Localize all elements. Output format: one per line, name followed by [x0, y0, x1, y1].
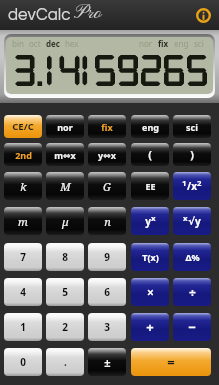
staticText: m — [18, 214, 28, 229]
staticText: − — [188, 318, 196, 336]
button[interactable]: CE/C — [4, 115, 42, 138]
staticText: = — [167, 353, 175, 371]
staticText: ÷ — [189, 284, 196, 300]
staticText: 1 — [20, 320, 26, 334]
staticText: oct — [29, 38, 41, 49]
staticText: ) — [190, 147, 194, 162]
staticText: k — [20, 179, 27, 194]
button[interactable]: 8 — [46, 243, 84, 271]
button[interactable]: EE — [131, 172, 169, 200]
staticText: /x — [187, 179, 197, 193]
button[interactable]: 4 — [4, 278, 42, 306]
staticText: ± — [104, 355, 111, 370]
button[interactable]: 2nd — [4, 143, 42, 166]
button[interactable]: fix — [88, 115, 126, 138]
button[interactable]: 2 — [46, 313, 84, 341]
staticText: M — [60, 179, 71, 194]
button[interactable]: − — [173, 313, 211, 341]
button[interactable]: × — [131, 278, 169, 306]
button[interactable]: . — [46, 348, 84, 376]
staticText: sci — [186, 121, 198, 133]
staticText: devCalc — [8, 6, 71, 24]
button[interactable]: x — [173, 207, 211, 235]
staticText: 4 — [20, 285, 26, 299]
staticText: × — [147, 284, 154, 300]
button[interactable]: y — [131, 207, 169, 235]
staticText: EE — [145, 180, 156, 192]
staticText: m⇔x — [54, 149, 76, 161]
staticText: 6 — [104, 285, 110, 299]
staticText: sci — [194, 38, 204, 49]
staticText: . — [64, 355, 67, 369]
staticText: 7 — [20, 250, 26, 264]
button[interactable]: n — [88, 207, 126, 235]
staticText: eng — [174, 38, 189, 49]
button[interactable]: sci — [173, 115, 211, 138]
staticText: 2 — [62, 320, 68, 334]
staticText: Δ% — [185, 251, 200, 263]
button[interactable]: 3 — [88, 313, 126, 341]
staticText: 2nd — [15, 149, 32, 161]
staticText: hex — [65, 38, 79, 49]
button[interactable]: + — [131, 313, 169, 341]
button[interactable]: ) — [173, 143, 211, 166]
button[interactable]: μ — [46, 207, 84, 235]
button[interactable]: = — [131, 348, 211, 376]
staticText: dec — [46, 38, 60, 49]
staticText: n — [104, 214, 111, 229]
button[interactable]: 6 — [88, 278, 126, 306]
staticText: y⇔x — [98, 149, 116, 161]
staticText: CE/C — [12, 120, 34, 133]
button[interactable]: 5 — [46, 278, 84, 306]
button[interactable]: M — [46, 172, 84, 200]
button[interactable]: 0 — [4, 348, 42, 376]
button[interactable]: Δ% — [173, 243, 211, 271]
staticText: μ — [62, 214, 69, 229]
button[interactable]: 7 — [4, 243, 42, 271]
staticText: eng — [142, 121, 159, 133]
button[interactable]: T(x) — [131, 243, 169, 271]
staticText: fix — [101, 121, 113, 133]
button[interactable]: About — [193, 5, 213, 25]
button[interactable]: nor — [46, 115, 84, 138]
button[interactable]: m — [4, 207, 42, 235]
staticText: + — [146, 318, 154, 336]
staticText: 2 — [197, 178, 202, 189]
staticText: x — [151, 213, 156, 224]
staticText: 5 — [62, 285, 68, 299]
staticText: T(x) — [142, 251, 159, 263]
button[interactable]: y⇔x — [88, 143, 126, 166]
staticText: ( — [148, 147, 152, 162]
button[interactable]: G — [88, 172, 126, 200]
button[interactable]: 1 — [4, 313, 42, 341]
staticText: x — [183, 213, 188, 224]
staticText: 9 — [104, 250, 110, 264]
staticText: G — [103, 179, 111, 194]
staticText: nor — [139, 38, 153, 49]
staticText: bin — [12, 38, 24, 49]
button[interactable]: k — [4, 172, 42, 200]
staticText: 0 — [20, 355, 26, 369]
button[interactable]: ( — [131, 143, 169, 166]
staticText: Pro — [74, 2, 102, 26]
button[interactable]: ± — [88, 348, 126, 376]
staticText: √y — [188, 214, 201, 228]
staticText: nor — [57, 121, 73, 133]
staticText: fix — [158, 38, 169, 49]
button[interactable]: 1 — [173, 172, 211, 200]
button[interactable]: ÷ — [173, 278, 211, 306]
button[interactable]: m⇔x — [46, 143, 84, 166]
button[interactable]: eng — [131, 115, 169, 138]
staticText: y — [145, 214, 151, 228]
button[interactable]: 9 — [88, 243, 126, 271]
staticText: 3 — [104, 320, 110, 334]
staticText: 8 — [62, 250, 68, 264]
staticText: 1 — [182, 178, 187, 189]
